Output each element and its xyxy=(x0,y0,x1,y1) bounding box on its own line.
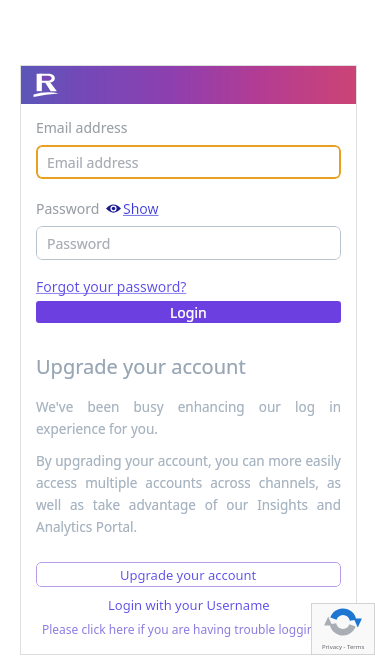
staticText: Forgot your password? xyxy=(36,277,187,296)
button[interactable]: Forgot your password? xyxy=(36,277,187,296)
staticText: Login with your Username xyxy=(108,596,270,614)
staticText: Email address xyxy=(36,118,128,137)
button[interactable]: Home xyxy=(33,71,59,99)
staticText: Privacy - Terms xyxy=(322,643,365,651)
staticText: Upgrade your account xyxy=(36,353,246,380)
button[interactable]: Email address input xyxy=(36,145,341,179)
button[interactable]: reCAPTCHA Privacy and Terms xyxy=(311,603,375,655)
button[interactable]: Login xyxy=(36,301,341,323)
staticText: We've been busy enhancing our log in exp… xyxy=(36,398,341,438)
staticText: Show xyxy=(123,199,159,218)
staticText: Password xyxy=(47,234,111,253)
button[interactable]: Login with your Username xyxy=(36,596,341,614)
staticText: Login xyxy=(170,303,207,322)
button[interactable]: Show password xyxy=(106,199,159,218)
button[interactable]: Password input xyxy=(36,226,341,260)
staticText: Email address xyxy=(47,153,139,172)
button[interactable]: Upgrade your account xyxy=(36,562,341,587)
staticText: By upgrading your account, you can more … xyxy=(36,452,341,536)
button[interactable]: Please click here if you are having trou… xyxy=(36,621,341,637)
staticText: Upgrade your account xyxy=(120,566,257,584)
staticText: Please click here if you are having trou… xyxy=(42,621,336,637)
staticText: Password xyxy=(36,199,100,218)
other: Show password xyxy=(106,203,121,214)
